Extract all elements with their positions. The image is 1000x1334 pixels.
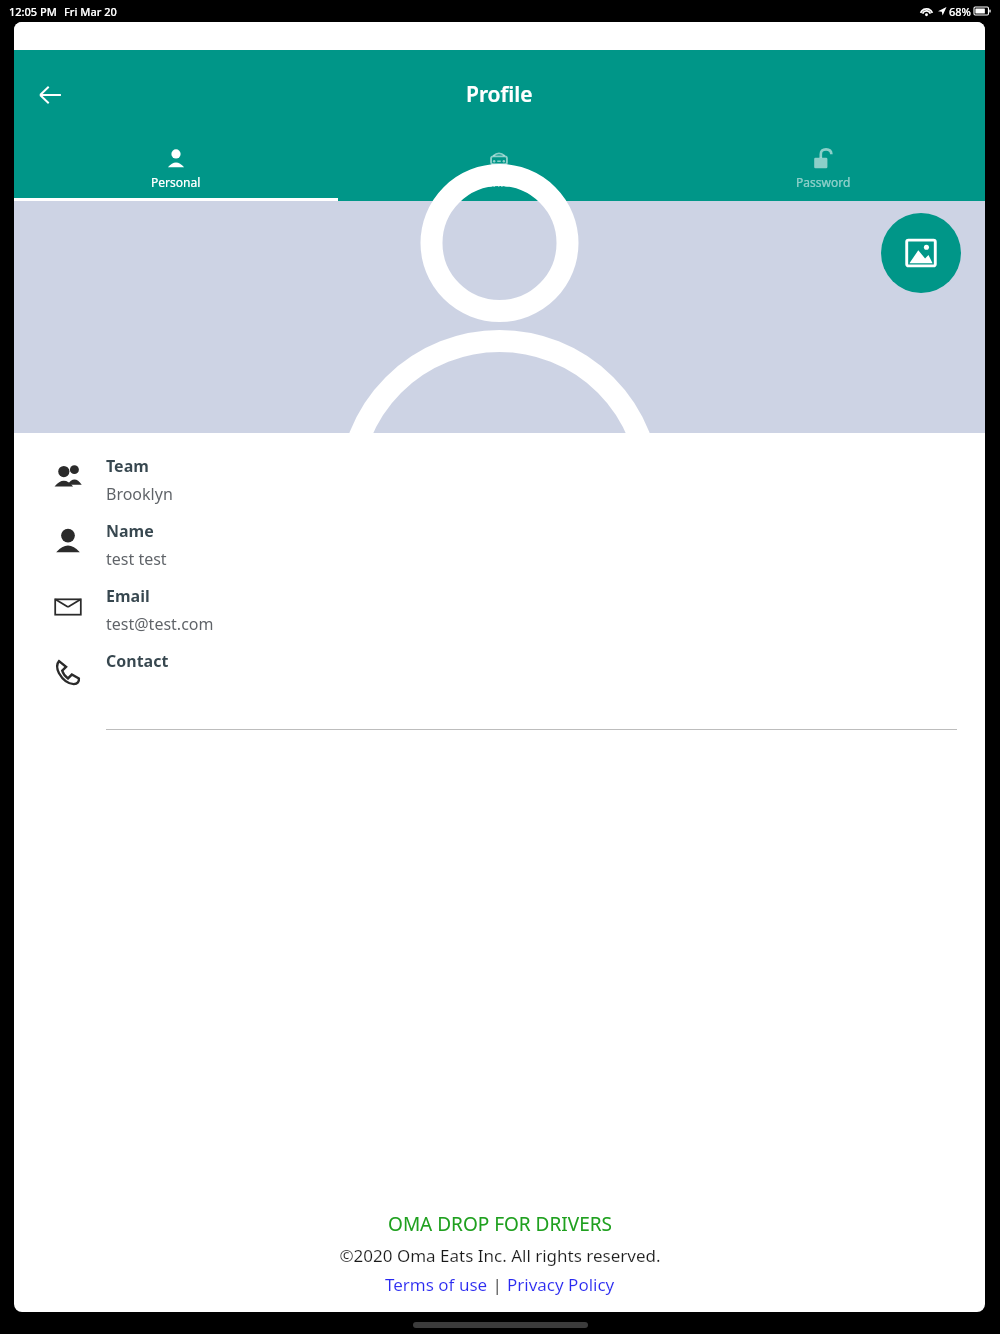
staticText: Brooklyn	[106, 483, 173, 505]
staticText: Password	[796, 174, 851, 190]
button[interactable]: Terms of use	[385, 1273, 488, 1296]
button[interactable]: Email	[14, 585, 985, 650]
staticText: Name	[106, 520, 154, 542]
button[interactable]: Personal	[14, 140, 337, 198]
button[interactable]: Team	[14, 455, 985, 520]
staticText: test@test.com	[106, 613, 214, 635]
button[interactable]: Change photo	[881, 213, 961, 293]
staticText: 68%	[949, 4, 971, 19]
staticText: Contact	[106, 650, 169, 672]
button[interactable]: Contact	[14, 650, 985, 715]
button[interactable]: Privacy Policy	[507, 1273, 615, 1296]
staticText: Vehicle	[479, 174, 519, 190]
staticText: test test	[106, 548, 167, 570]
button[interactable]: Back	[26, 71, 74, 119]
staticText: Personal	[151, 174, 201, 190]
button[interactable]: Password	[661, 140, 985, 198]
button[interactable]: Vehicle	[337, 140, 661, 198]
staticText: Privacy Policy	[507, 1273, 615, 1296]
staticText: Terms of use	[385, 1273, 488, 1296]
button[interactable]: Name	[14, 520, 985, 585]
staticText: Profile	[466, 80, 533, 109]
staticText: Fri Mar 20	[64, 4, 117, 19]
staticText: OMA DROP FOR DRIVERS	[388, 1211, 612, 1237]
staticText: Team	[106, 455, 149, 477]
staticText: |	[488, 1273, 507, 1296]
staticText: 12:05 PM	[9, 4, 57, 19]
staticText: ©2020 Oma Eats Inc. All rights reserved.	[339, 1244, 661, 1267]
staticText: Email	[106, 585, 150, 607]
